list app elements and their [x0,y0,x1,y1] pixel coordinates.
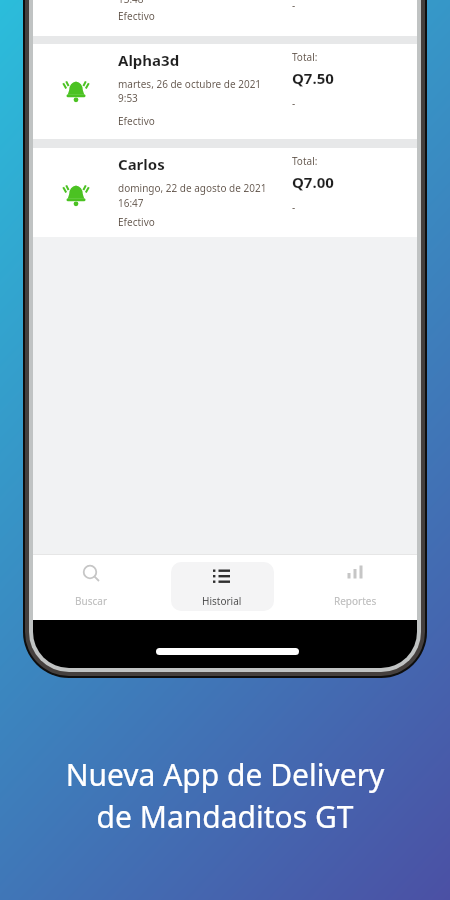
staticText: - [292,200,296,214]
staticText: Q7.50 [292,68,334,88]
button[interactable]: Historial [161,555,289,620]
staticText: - [292,96,296,110]
staticText: Efectivo [118,9,155,23]
staticText: - [292,0,296,12]
staticText: Efectivo [118,114,155,128]
staticText: Alpha3d [118,50,180,70]
staticText: 13:48 [118,0,144,6]
staticText: Nueva App de Delivery [0,754,450,795]
staticText: 16:47 [118,196,144,210]
staticText: Total: [292,50,318,64]
staticText: Historial [202,594,242,608]
button[interactable]: Alpha3d [33,44,417,139]
button[interactable]: Carlos [33,148,417,237]
button[interactable]: Reportes [289,555,417,620]
staticText: 9:53 [118,91,138,105]
staticText: Buscar [75,594,108,608]
staticText: Efectivo [118,215,155,229]
staticText: martes, 26 de octubre de 2021 [118,77,262,91]
staticText: de Mandaditos GT [0,796,450,837]
staticText: Total: [292,154,318,168]
staticText: Reportes [334,594,377,608]
button[interactable]: Buscar [33,555,161,620]
staticText: domingo, 22 de agosto de 2021 [118,181,267,195]
staticText: Q7.00 [292,172,334,192]
button[interactable]: 13:48 [33,0,417,36]
staticText: Carlos [118,154,165,174]
